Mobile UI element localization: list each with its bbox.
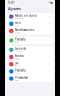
staticText: Casa [15,25,19,27]
staticText: Buscar [15,65,21,67]
staticText: Brillo [15,41,18,43]
staticText: > [49,29,51,33]
staticText: > [49,62,51,66]
button[interactable]: Pantalla [7,68,53,75]
button[interactable]: Pantalla [7,37,53,44]
staticText: > [49,77,51,80]
button[interactable]: Fondo [7,53,53,61]
staticText: Fondo [15,54,24,58]
staticText: Siri [15,61,19,65]
staticText: Modo en vuelo [15,14,37,17]
staticText: Pantalla [15,38,25,41]
staticText: Privacidad [15,76,28,79]
staticText: > [49,55,51,59]
staticText: Notificaciones [15,28,34,32]
staticText: Datos [15,80,19,81]
button[interactable]: Notificaciones [7,27,53,35]
button[interactable]: Modo en vuelo [7,13,53,20]
staticText: > [49,70,51,73]
staticText: > [49,48,51,51]
button[interactable]: General [7,46,53,53]
button[interactable]: Siri [7,61,53,68]
staticText: Tiempo [15,72,20,74]
staticText: Imagen [15,58,20,60]
staticText: > [49,39,51,42]
staticText: Desactivado [15,18,24,19]
button[interactable]: Privacidad [7,75,53,82]
staticText: Sonidos [15,32,21,34]
staticText: Ajustes [8,6,21,11]
staticText: ••▮ [49,1,52,4]
staticText: General [15,47,26,50]
staticText: Acerca de [15,51,23,53]
staticText: > [49,22,51,25]
staticText: Wi-Fi [15,21,21,24]
staticText: > [49,15,51,18]
button[interactable]: Wi-Fi [7,20,53,27]
staticText: Pantalla [15,69,25,72]
staticText: 9:41 [8,1,15,4]
